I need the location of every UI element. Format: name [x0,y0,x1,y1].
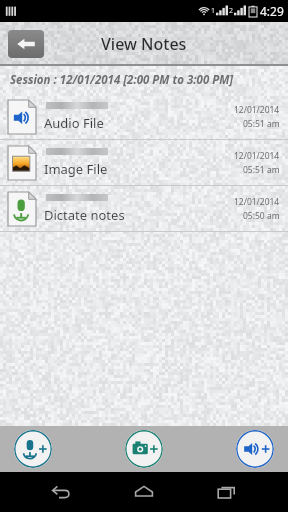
button[interactable]: Back [8,30,44,58]
staticText: View Notes [101,33,187,55]
staticText: 05:51 am [243,118,280,130]
staticText: Session : 12/01/2014 [2:00 PM to 3:00 PM… [10,72,234,88]
staticText: Audio File [44,114,104,132]
button[interactable]: Dictate notes [0,186,288,231]
staticText: 12/01/2014 [234,150,280,162]
staticText: 12/01/2014 [234,196,280,208]
button[interactable]: Recents [205,472,249,512]
staticText: 4:29 [260,3,284,19]
button[interactable]: Add voice note [236,430,274,468]
staticText: 2 [229,6,234,16]
button[interactable]: Add photo note [125,430,163,468]
button[interactable]: Home [122,472,166,512]
staticText: 05:51 am [243,164,280,176]
button[interactable]: Image File [0,140,288,185]
staticText: 12/01/2014 [234,104,280,116]
staticText: 05:50 am [243,210,280,222]
button[interactable]: Back [39,472,83,512]
button[interactable]: Audio File [0,94,288,139]
button[interactable]: Add audio note [14,430,52,468]
staticText: Dictate notes [44,206,125,224]
staticText: Image File [44,160,108,178]
staticText: 1 [211,6,216,16]
